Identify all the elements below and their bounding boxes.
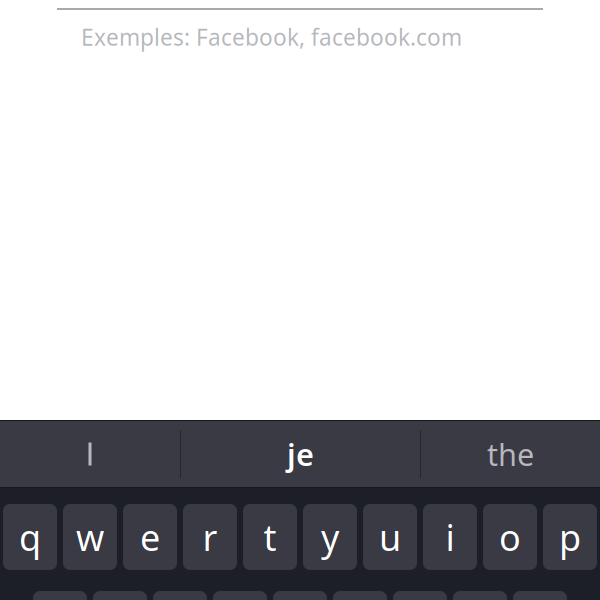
button[interactable]: o (483, 504, 537, 570)
staticText: je (287, 434, 314, 474)
staticText: p (559, 513, 581, 561)
button[interactable]: i (423, 504, 477, 570)
button[interactable]: k (453, 591, 507, 600)
button[interactable]: r (183, 504, 237, 570)
button[interactable]: s (93, 591, 147, 600)
staticText: r (202, 513, 217, 561)
button[interactable]: l (513, 591, 567, 600)
button[interactable]: g (273, 591, 327, 600)
staticText: Exemples: Facebook, facebook.com (81, 22, 462, 52)
button[interactable]: t (243, 504, 297, 570)
button[interactable]: u (363, 504, 417, 570)
button[interactable]: j (393, 591, 447, 600)
button[interactable]: y (303, 504, 357, 570)
staticText: t (263, 513, 276, 561)
button[interactable]: e (123, 504, 177, 570)
staticText: e (140, 513, 160, 561)
button[interactable]: the (421, 420, 600, 487)
staticText: w (76, 513, 104, 561)
staticText: o (499, 513, 521, 561)
staticText: q (19, 513, 41, 561)
button[interactable]: f (213, 591, 267, 600)
staticText: the (487, 434, 534, 474)
button[interactable]: h (333, 591, 387, 600)
button[interactable]: I (0, 420, 180, 487)
button[interactable]: q (3, 504, 57, 570)
staticText: y (321, 513, 339, 561)
button[interactable]: je (181, 420, 420, 487)
staticText: u (379, 513, 401, 561)
button[interactable]: p (543, 504, 597, 570)
button[interactable]: a (33, 591, 87, 600)
button[interactable]: w (63, 504, 117, 570)
button[interactable]: d (153, 591, 207, 600)
staticText: i (445, 513, 454, 561)
